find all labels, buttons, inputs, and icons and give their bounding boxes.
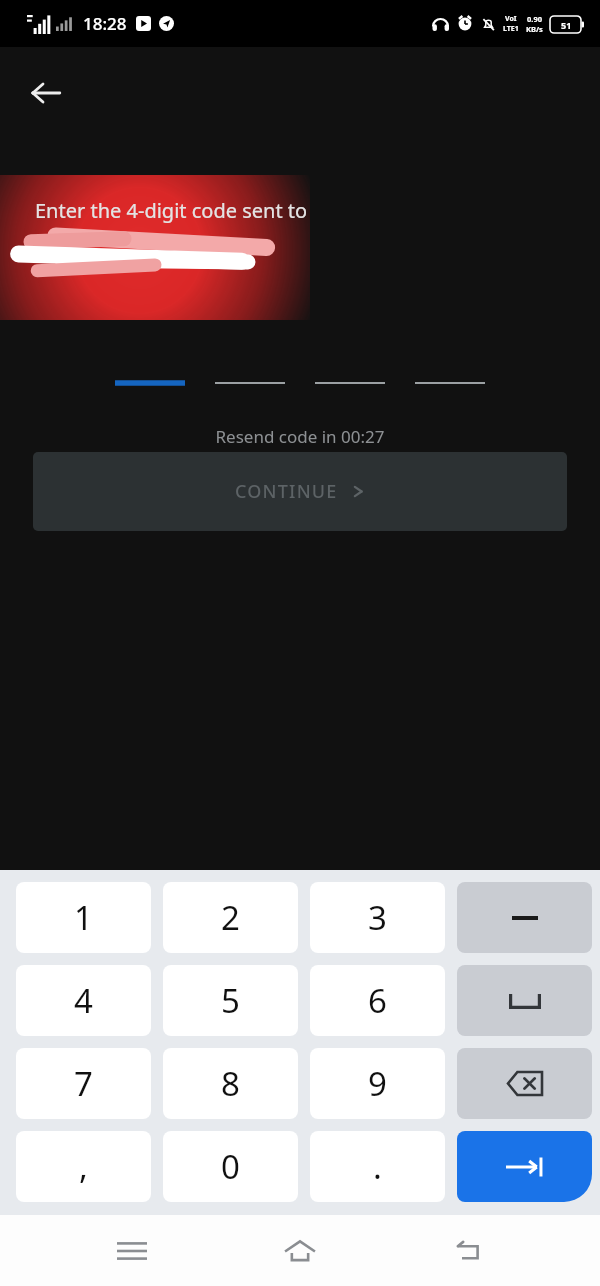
button[interactable]: 8 xyxy=(163,1048,298,1119)
button[interactable] xyxy=(415,375,485,391)
staticText: 18:28 xyxy=(83,12,127,35)
button[interactable]: Minus xyxy=(457,882,592,953)
button[interactable]: 5 xyxy=(163,965,298,1036)
button[interactable]: CONTINUE xyxy=(33,452,567,531)
button[interactable]: 6 xyxy=(310,965,445,1036)
staticText: 7 xyxy=(74,1061,93,1106)
staticText: 4 xyxy=(74,978,93,1023)
button[interactable]: 3 xyxy=(310,882,445,953)
button[interactable]: Backspace xyxy=(457,1048,592,1119)
staticText: CONTINUE xyxy=(235,479,338,504)
staticText: 0 xyxy=(221,1144,240,1189)
staticText: LTE1 xyxy=(503,24,519,34)
button[interactable]: Back xyxy=(18,65,74,121)
button[interactable]: Enter xyxy=(457,1131,592,1202)
staticText: 5 xyxy=(221,978,240,1023)
button[interactable]: Back xyxy=(432,1215,504,1286)
staticText: 8 xyxy=(221,1061,240,1106)
staticText: Enter the 4-digit code sent to xyxy=(35,197,308,224)
staticText: 0.90 xyxy=(527,14,542,24)
staticText: VoI xyxy=(505,14,517,24)
staticText: 51 xyxy=(561,19,572,31)
button[interactable] xyxy=(115,375,185,391)
staticText: KB/s xyxy=(526,24,543,34)
button[interactable]: 2 xyxy=(163,882,298,953)
staticText: 6 xyxy=(368,978,387,1023)
button[interactable] xyxy=(215,375,285,391)
staticText: Resend code in 00:27 xyxy=(0,425,600,448)
button[interactable]: 7 xyxy=(16,1048,151,1119)
button[interactable]: . xyxy=(310,1131,445,1202)
staticText: . xyxy=(373,1144,382,1189)
staticText: 2 xyxy=(221,895,240,940)
button[interactable]: Recent apps xyxy=(96,1215,168,1286)
staticText: 3 xyxy=(368,895,387,940)
button[interactable]: 4 xyxy=(16,965,151,1036)
button[interactable]: 9 xyxy=(310,1048,445,1119)
staticText: 1 xyxy=(74,895,93,940)
staticText: , xyxy=(79,1144,88,1189)
button[interactable]: Space xyxy=(457,965,592,1036)
button[interactable]: , xyxy=(16,1131,151,1202)
button[interactable]: 0 xyxy=(163,1131,298,1202)
button[interactable]: 1 xyxy=(16,882,151,953)
staticText: 9 xyxy=(368,1061,387,1106)
button[interactable]: Home xyxy=(264,1215,336,1286)
button[interactable] xyxy=(315,375,385,391)
